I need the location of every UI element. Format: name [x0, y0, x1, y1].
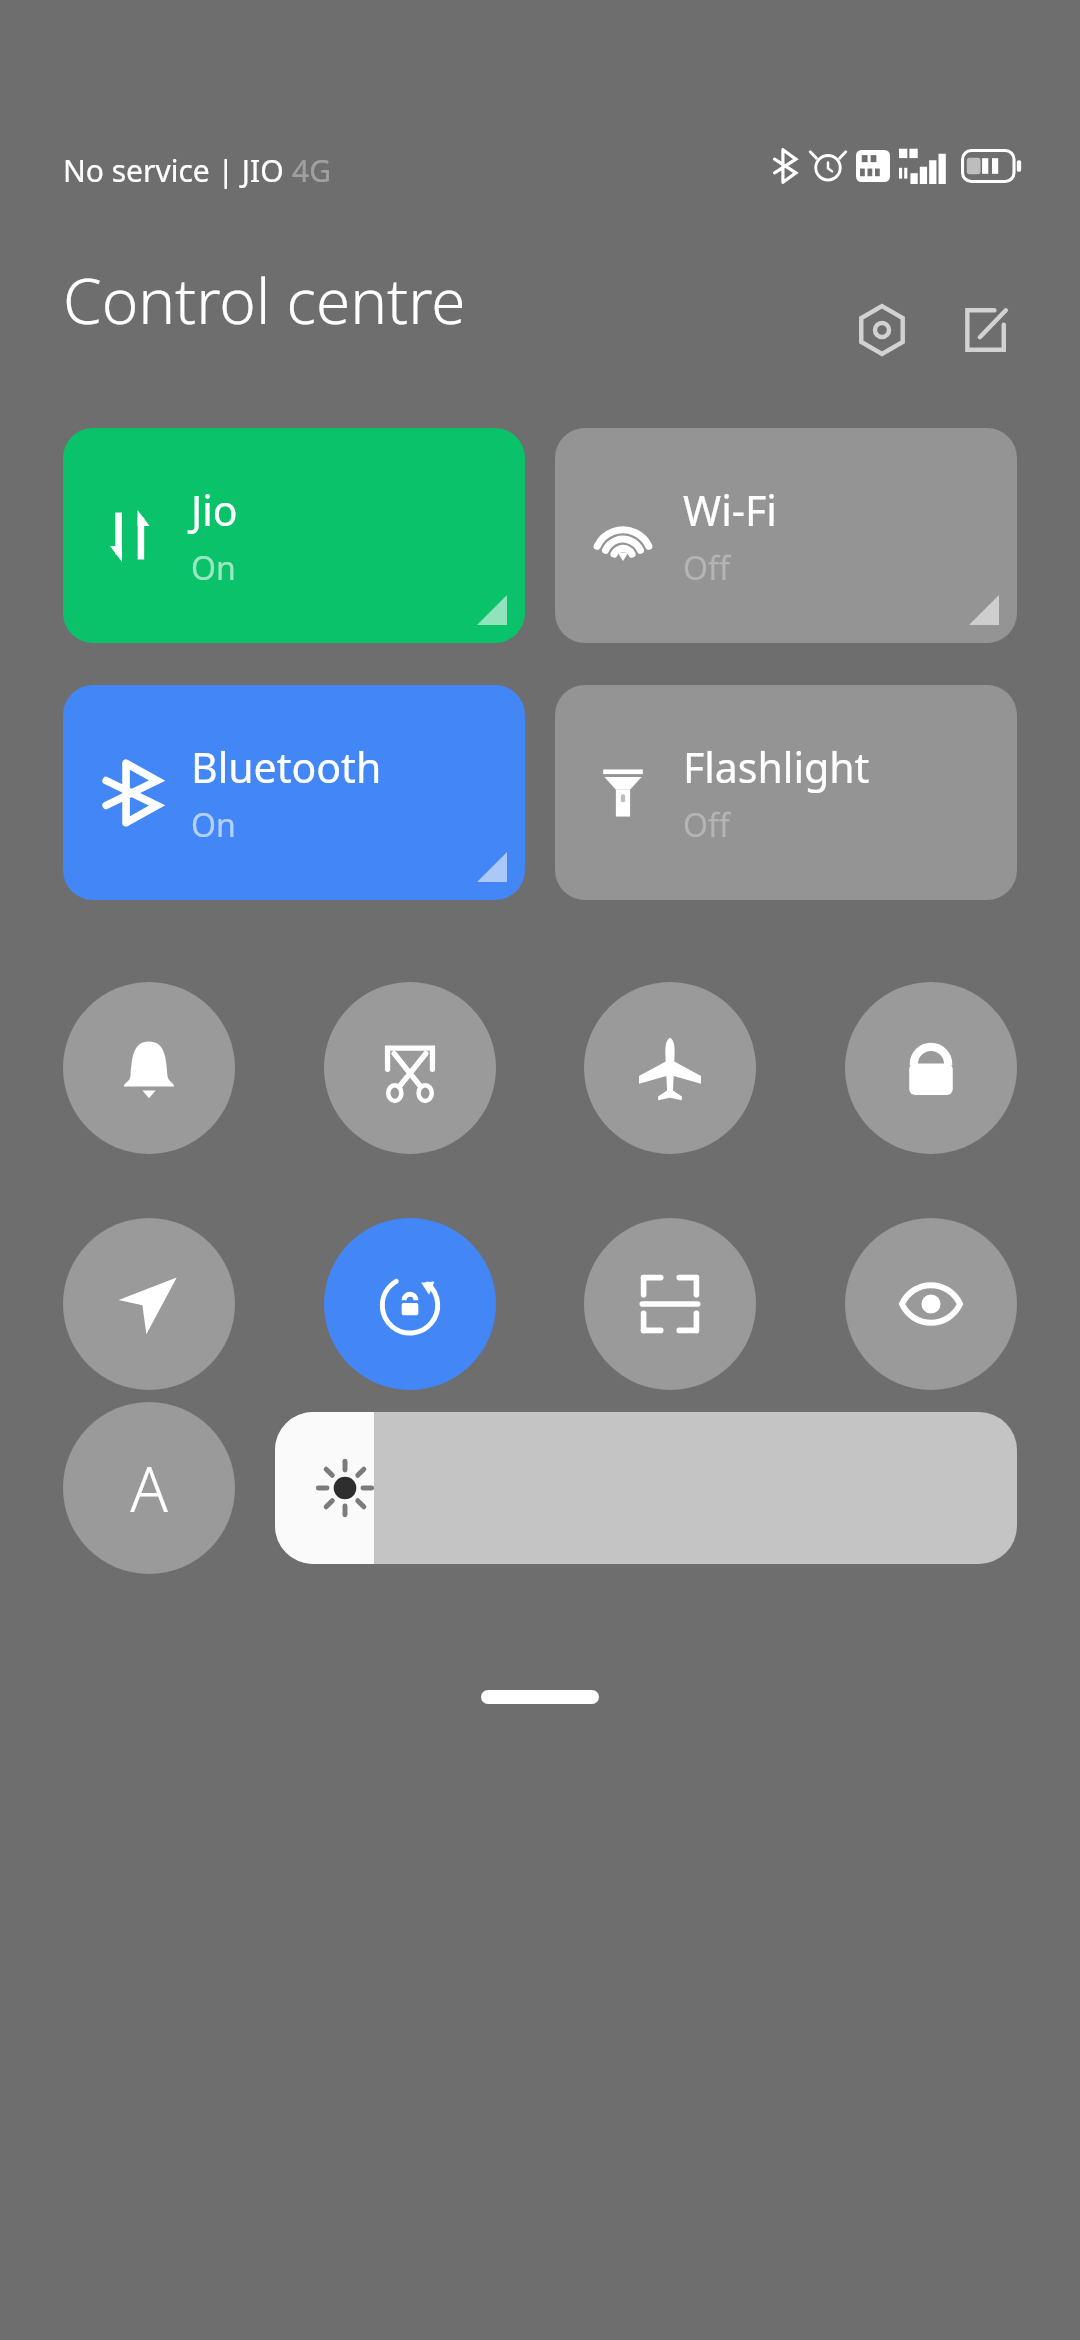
staticText: Flashlight [683, 739, 870, 795]
button[interactable]: Screenshot [324, 982, 496, 1154]
button[interactable]: Airplane mode [584, 982, 756, 1154]
button[interactable]: Location [63, 1218, 235, 1390]
button[interactable]: Brightness [275, 1412, 1017, 1564]
staticText: 4G [292, 150, 331, 191]
button[interactable]: Reading mode [845, 1218, 1017, 1390]
button[interactable]: Edit [940, 286, 1028, 374]
staticText: Wi-Fi [683, 482, 777, 538]
staticText: On [191, 546, 236, 590]
button[interactable]: Ringer [63, 982, 235, 1154]
button[interactable]: Jio [63, 428, 525, 643]
staticText: Off [683, 803, 731, 847]
button[interactable]: Wi-Fi [555, 428, 1017, 643]
staticText: Jio [191, 482, 238, 538]
button[interactable]: Flashlight [555, 685, 1017, 900]
button[interactable]: Auto-rotate [324, 1218, 496, 1390]
staticText: No service | JIO [63, 150, 292, 191]
button[interactable]: Scan [584, 1218, 756, 1390]
staticText: Bluetooth [191, 739, 382, 795]
staticText: Off [683, 546, 731, 590]
button[interactable]: Bluetooth [63, 685, 525, 900]
staticText: On [191, 803, 236, 847]
button[interactable]: Settings [838, 286, 926, 374]
button[interactable]: Auto brightness [63, 1402, 235, 1574]
staticText: Control centre [63, 258, 466, 342]
button[interactable]: Lock [845, 982, 1017, 1154]
staticText: A [130, 1446, 168, 1530]
